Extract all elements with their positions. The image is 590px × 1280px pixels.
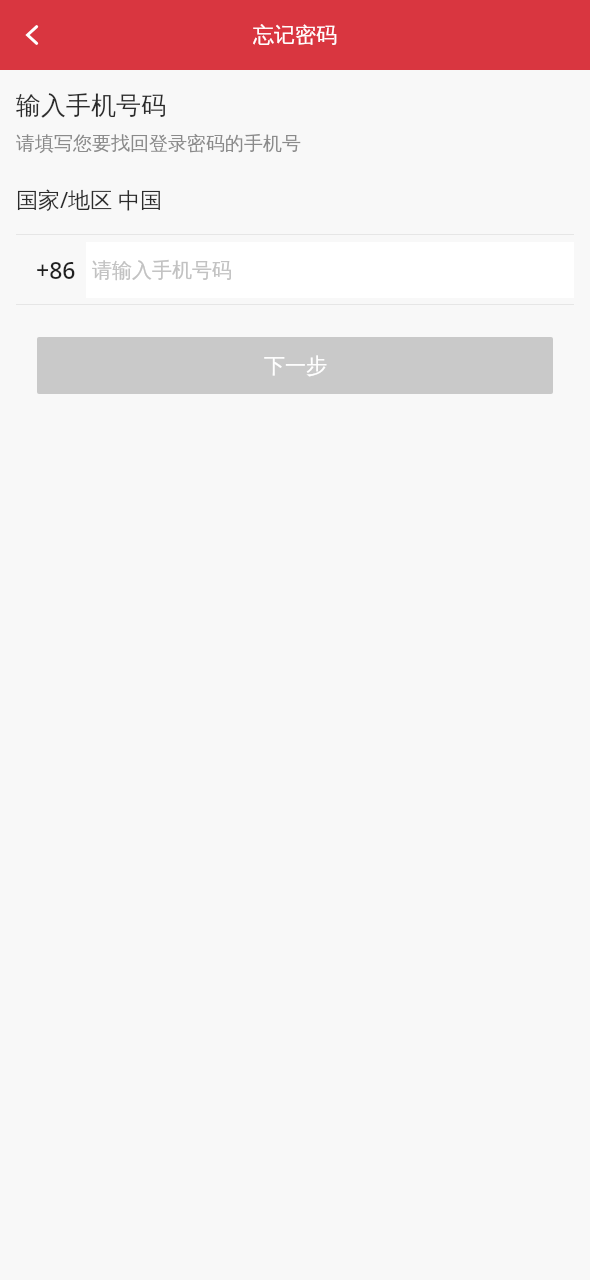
staticText: 请填写您要找回登录密码的手机号 (16, 132, 301, 156)
button[interactable]: Back (0, 0, 64, 70)
button[interactable]: 国家/地区 中国 (0, 184, 590, 214)
button[interactable]: +86 (0, 235, 590, 304)
staticText: 国家/地区 中国 (16, 184, 162, 214)
button[interactable]: 下一步 (37, 337, 553, 394)
staticText: 忘记密码 (253, 22, 337, 48)
staticText: +86 (36, 254, 76, 285)
staticText: 请输入手机号码 (92, 258, 232, 283)
staticText: 下一步 (264, 353, 327, 379)
staticText: 输入手机号码 (16, 90, 166, 121)
